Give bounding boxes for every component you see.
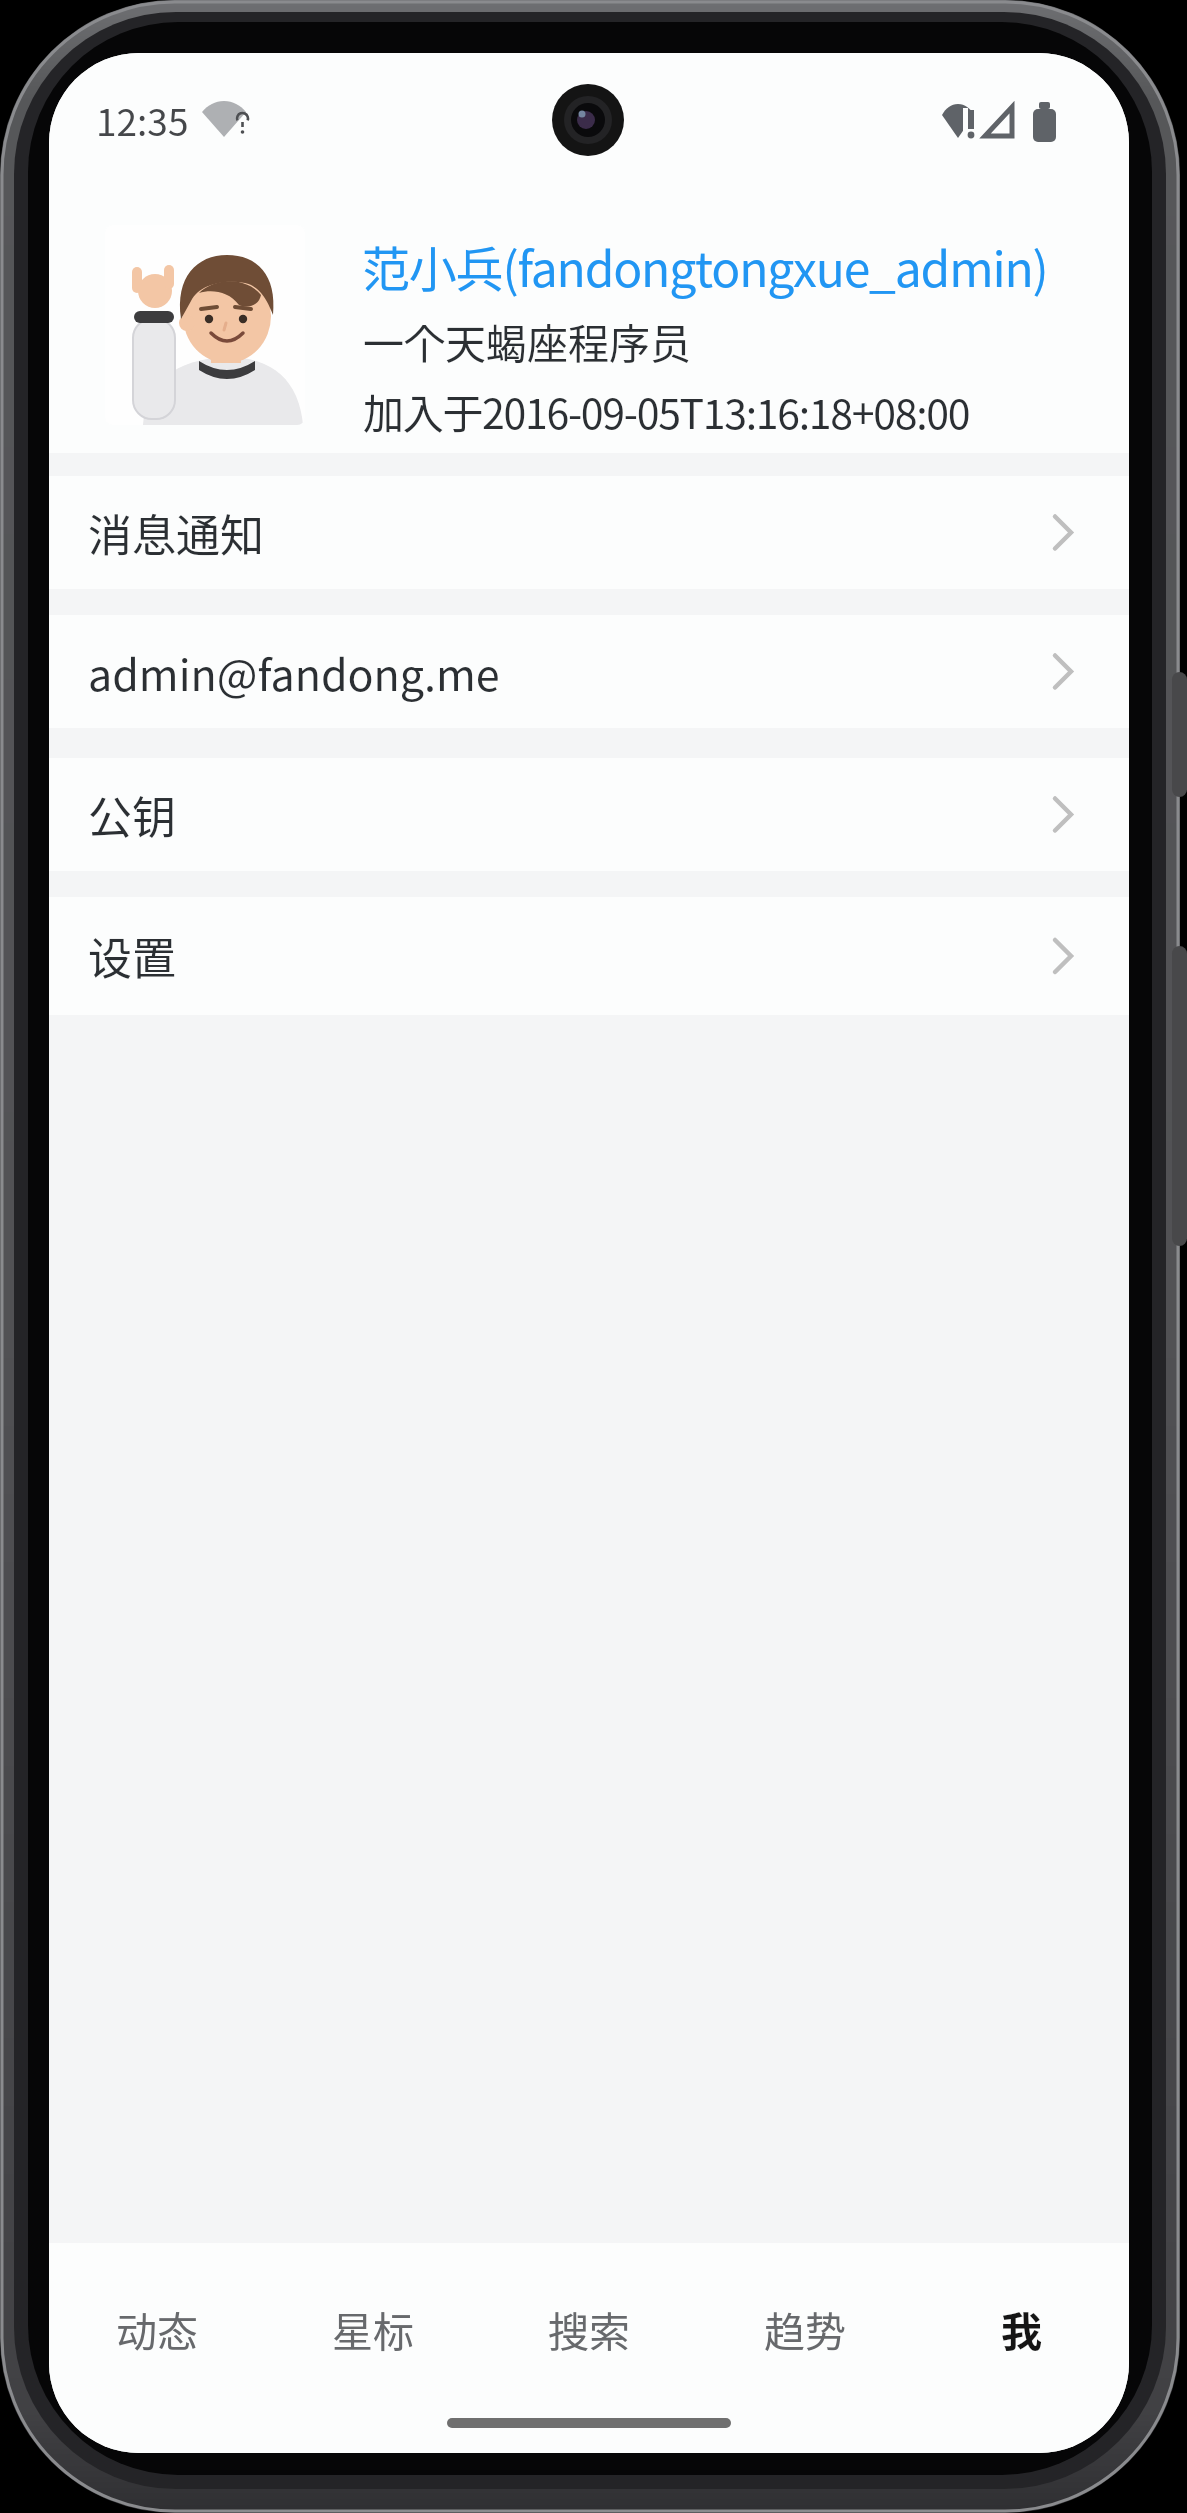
button[interactable]: 动态 (49, 2243, 265, 2413)
button[interactable]: 消息通知 (49, 476, 1129, 589)
staticText: 公钥 (88, 783, 176, 847)
button[interactable]: 搜索 (481, 2243, 697, 2413)
button[interactable]: 趋势 (697, 2243, 913, 2413)
staticText: 趋势 (764, 2299, 846, 2358)
staticText: 加入于2016-09-05T13:16:18+08:00 (363, 381, 970, 440)
button[interactable]: 我 (913, 2243, 1129, 2413)
staticText: 消息通知 (88, 501, 264, 565)
button[interactable]: 星标 (265, 2243, 481, 2413)
staticText: 动态 (116, 2299, 198, 2358)
staticText: 12:35 (96, 93, 189, 147)
staticText: 我 (1001, 2299, 1042, 2358)
button[interactable]: 公钥 (49, 758, 1129, 871)
staticText: 一个天蝎座程序员 (363, 311, 691, 370)
staticText: admin@fandong.me (88, 641, 500, 703)
staticText: 范小兵(fandongtongxue_admin) (362, 231, 1048, 301)
button[interactable]: admin@fandong.me (49, 615, 1129, 728)
button[interactable]: 设置 (49, 897, 1129, 1015)
staticText: 搜索 (548, 2299, 630, 2358)
staticText: 设置 (88, 924, 176, 988)
staticText: 星标 (332, 2299, 414, 2358)
